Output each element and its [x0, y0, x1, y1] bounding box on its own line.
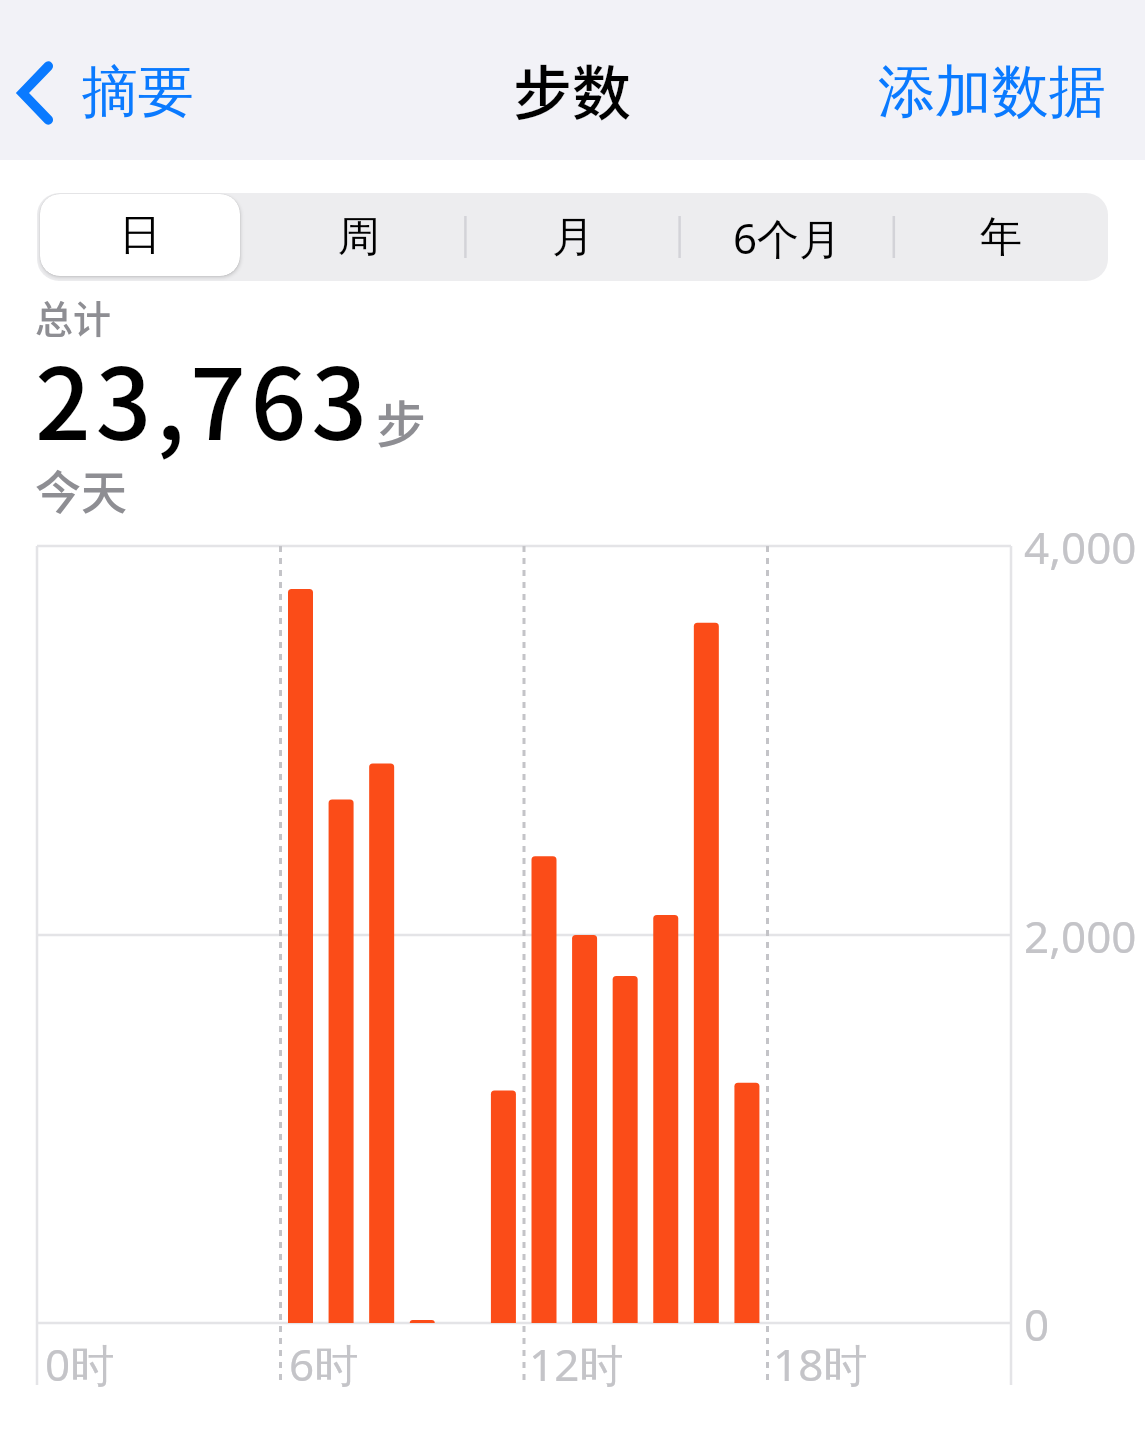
- staticText: 4,000: [1024, 517, 1137, 577]
- staticText: 23,763: [35, 326, 372, 468]
- staticText: 总计: [35, 289, 112, 344]
- staticText: 0: [1024, 1294, 1050, 1354]
- staticText: 0时: [45, 1334, 115, 1394]
- staticText: 年: [980, 211, 1022, 264]
- button[interactable]: 6个月: [680, 193, 894, 281]
- button[interactable]: 添加数据: [878, 56, 1145, 128]
- button[interactable]: 月: [466, 193, 680, 281]
- staticText: 2,000: [1024, 906, 1137, 966]
- staticText: 12时: [529, 1334, 624, 1394]
- staticText: 周: [338, 211, 380, 264]
- staticText: 月: [552, 211, 594, 264]
- staticText: 摘要: [82, 57, 194, 128]
- staticText: 步数: [513, 47, 632, 132]
- staticText: 步: [376, 385, 426, 457]
- staticText: 6个月: [733, 209, 842, 266]
- staticText: 6时: [289, 1334, 359, 1394]
- staticText: 18时: [773, 1334, 868, 1394]
- staticText: 今天: [35, 456, 127, 523]
- button[interactable]: 年: [894, 193, 1108, 281]
- button[interactable]: 返回摘要: [8, 51, 202, 134]
- button[interactable]: 周: [252, 193, 466, 281]
- button[interactable]: [37, 193, 252, 281]
- staticText: 日: [119, 209, 161, 262]
- button[interactable]: 日: [40, 194, 240, 276]
